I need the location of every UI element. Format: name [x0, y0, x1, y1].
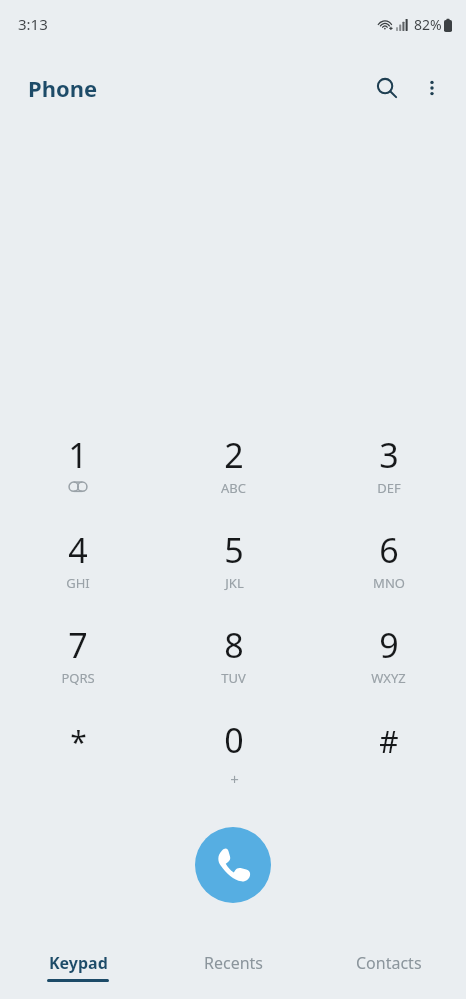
button[interactable]: Contacts [311, 936, 466, 992]
button[interactable]: Call [195, 827, 271, 903]
button[interactable]: 0 [156, 709, 311, 801]
button[interactable]: Search [364, 65, 410, 111]
staticText: 3:13 [18, 14, 48, 34]
staticText: GHI [66, 574, 90, 592]
staticText: PQRS [61, 669, 95, 687]
staticText: DEF [377, 479, 401, 497]
button[interactable]: More options [410, 66, 454, 110]
staticText: 3 [379, 432, 399, 478]
button[interactable]: # [311, 709, 466, 801]
staticText: TUV [221, 669, 246, 687]
staticText: Recents [204, 952, 264, 974]
button[interactable]: 5 [156, 519, 311, 614]
button[interactable]: Keypad [0, 936, 156, 992]
staticText: 9 [379, 622, 399, 668]
staticText: Keypad [49, 952, 108, 974]
button[interactable]: 4 [0, 519, 156, 614]
staticText: JKL [225, 574, 244, 592]
staticText: Contacts [356, 952, 422, 974]
button[interactable]: 1 [0, 424, 156, 519]
button[interactable]: * [0, 709, 156, 801]
staticText: 8 [224, 622, 244, 668]
staticText: 6 [379, 527, 399, 573]
staticText: 0 [224, 717, 244, 763]
staticText: 2 [224, 432, 244, 478]
staticText: + [230, 769, 239, 789]
button[interactable]: Recents [156, 936, 311, 992]
staticText: MNO [373, 574, 405, 592]
staticText: 5 [224, 527, 244, 573]
staticText: # [379, 721, 399, 762]
button[interactable]: 7 [0, 614, 156, 709]
staticText: WXYZ [371, 669, 406, 687]
button[interactable]: 3 [311, 424, 466, 519]
staticText: * [70, 721, 87, 762]
button[interactable]: 9 [311, 614, 466, 709]
staticText: 1 [68, 432, 88, 478]
staticText: 4 [68, 527, 88, 573]
button[interactable]: 2 [156, 424, 311, 519]
button[interactable]: 6 [311, 519, 466, 614]
button[interactable]: 8 [156, 614, 311, 709]
staticText: ABC [221, 479, 246, 497]
staticText: 82% [414, 15, 442, 34]
staticText: Phone [28, 73, 98, 103]
staticText: 7 [68, 622, 88, 668]
